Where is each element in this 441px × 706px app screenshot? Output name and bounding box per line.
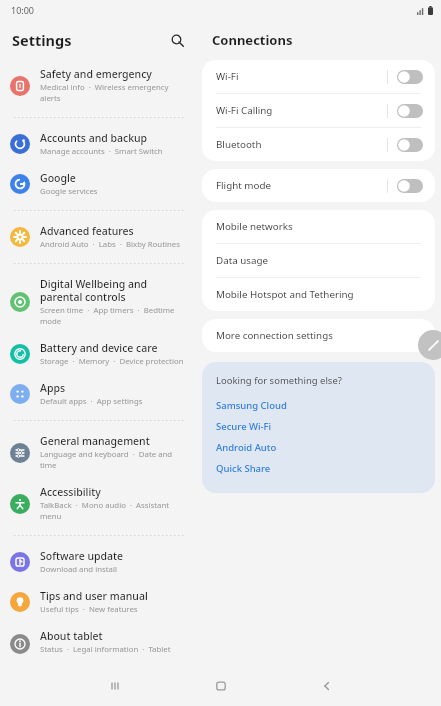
staticText: Mobile networks [216,220,293,233]
staticText: Screen time · App timers · Bedtime mode [40,305,190,327]
staticText: TalkBack · Mono audio · Assistant menu [40,500,190,522]
staticText: Manage accounts · Smart Switch [40,146,163,157]
button[interactable]: Data usage [202,244,435,277]
button[interactable]: Secure Wi-Fi [216,416,423,437]
staticText: Android Auto · Labs · Bixby Routines [40,239,180,250]
staticText: Secure Wi-Fi [216,420,272,433]
staticText: Battery and device care [40,341,158,355]
staticText: Software update [40,549,124,563]
staticText: Data usage [216,254,269,267]
staticText: Bluetooth [216,138,262,151]
button[interactable]: Home [204,669,238,703]
button[interactable]: About tablet [0,622,196,665]
staticText: Useful tips · New features [40,604,138,615]
staticText: Mobile Hotspot and Tethering [216,288,354,301]
button[interactable]: Software update [0,542,196,582]
button[interactable]: Mobile Hotspot and Tethering [202,278,435,311]
staticText: Accessibility [40,485,101,499]
staticText: Tips and user manual [40,589,148,603]
staticText: Download and install [40,564,117,575]
button[interactable]: Digital Wellbeing and parental controls [0,270,196,334]
staticText: Flight mode [216,179,271,192]
button[interactable]: Android Auto [216,437,423,458]
staticText: Status · Legal information · Tablet name [40,644,190,658]
button[interactable]: Edit [418,330,441,360]
button[interactable]: General management [0,427,196,478]
staticText: 10:00 [11,4,35,16]
staticText: Google services [40,186,98,197]
button[interactable]: Wi-Fi [202,60,435,93]
button[interactable]: Tips and user manual [0,582,196,622]
staticText: Apps [40,381,66,395]
button[interactable]: Accessibility [0,478,196,529]
staticText: Default apps · App settings [40,396,143,407]
staticText: Wi-Fi [216,70,239,83]
staticText: More connection settings [216,329,333,342]
button[interactable]: Mobile networks [202,210,435,243]
button[interactable]: Google [0,164,196,204]
staticText: About tablet [40,629,103,643]
button[interactable]: Flight mode [202,169,435,202]
staticText: Samsung Cloud [216,399,287,412]
button[interactable]: Apps [0,374,196,414]
staticText: Medical info · Wireless emergency alerts [40,82,190,104]
button[interactable]: Quick Share [216,458,423,479]
staticText: Settings [12,30,72,50]
staticText: Language and keyboard · Date and time [40,449,190,471]
staticText: Looking for something else? [216,374,342,387]
staticText: Storage · Memory · Device protection [40,356,184,367]
staticText: Wi-Fi Calling [216,104,273,117]
staticText: General management [40,434,150,448]
button[interactable]: Battery and device care [0,334,196,374]
button[interactable]: Bluetooth [202,128,435,161]
button[interactable]: Advanced features [0,217,196,257]
staticText: Quick Share [216,462,271,475]
staticText: Accounts and backup [40,131,148,145]
button[interactable]: More connection settings [202,319,435,352]
button[interactable]: Wi-Fi Calling [202,94,435,127]
button[interactable]: Samsung Cloud [216,395,423,416]
staticText: Digital Wellbeing and parental controls [40,277,190,304]
staticText: Advanced features [40,224,134,238]
staticText: Connections [212,31,293,49]
button[interactable]: Search [164,27,190,53]
button[interactable]: Safety and emergency [0,60,196,111]
button[interactable]: Recents [98,669,132,703]
staticText: Google [40,171,76,185]
button[interactable]: Back [310,669,344,703]
staticText: Android Auto [216,441,277,454]
staticText: Safety and emergency [40,67,152,81]
button[interactable]: Accounts and backup [0,124,196,164]
